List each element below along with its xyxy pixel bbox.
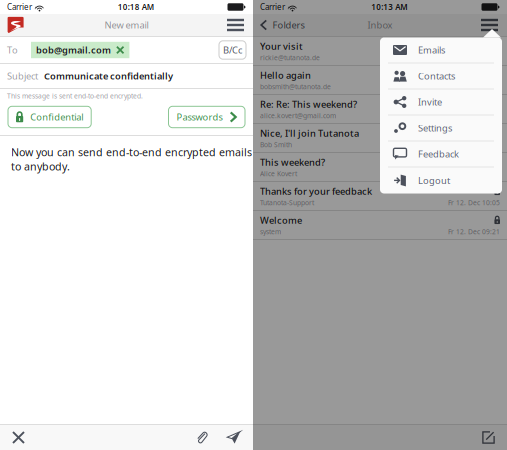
staticText: Your visit <box>260 40 303 52</box>
staticText: Carrier <box>260 2 285 12</box>
staticText: Confidential <box>30 111 83 123</box>
button[interactable]: Passwords <box>168 106 245 128</box>
staticText: Thanks for your feedback <box>260 185 372 197</box>
staticText: Fr 12. Dec 10:05 <box>448 198 500 207</box>
staticText: B/Cc <box>223 44 242 56</box>
staticText: rickie@tutanota.de <box>260 53 320 62</box>
staticText: Folders <box>272 19 304 31</box>
staticText: Emails <box>418 44 445 56</box>
staticText: Re: Re: This weekend? <box>260 98 357 110</box>
button[interactable]: Logout <box>380 167 502 193</box>
staticText: Feedback <box>418 148 459 160</box>
staticText: Communicate confidentially <box>44 70 173 82</box>
staticText: Welcome <box>260 214 302 226</box>
staticText: Settings <box>418 122 452 134</box>
staticText: 10:18 AM <box>118 2 154 12</box>
button[interactable]: Compose <box>477 426 500 449</box>
staticText: Hello again <box>260 69 311 81</box>
staticText: Subject <box>7 70 38 82</box>
staticText: Now you can send end-to-end encrypted em… <box>11 145 252 173</box>
button[interactable]: Settings <box>380 115 502 141</box>
staticText: bob@gmail.com <box>36 44 111 56</box>
staticText: Nice, I'll join Tutanota <box>260 127 359 139</box>
button[interactable]: Folders <box>260 19 304 31</box>
button[interactable]: Invite <box>380 89 502 115</box>
staticText: bobsmith@tutanota.de <box>260 82 331 91</box>
button[interactable]: Attach <box>191 426 214 449</box>
staticText: This weekend? <box>260 156 325 168</box>
button[interactable]: Send <box>222 426 246 449</box>
staticText: Carrier <box>7 2 32 12</box>
button[interactable]: Menu <box>225 17 246 33</box>
button[interactable]: Menu <box>479 17 500 33</box>
button[interactable]: Feedback <box>380 141 502 167</box>
staticText: New email <box>104 19 148 31</box>
staticText: Inbox <box>367 19 392 31</box>
button[interactable]: Remove recipient <box>116 46 124 54</box>
button[interactable]: B/Cc <box>219 41 246 59</box>
staticText: Tutanota-Support <box>260 198 314 207</box>
staticText: Invite <box>418 96 442 108</box>
staticText: Contacts <box>418 70 455 82</box>
button[interactable]: Confidential <box>8 106 91 128</box>
button[interactable]: Close <box>7 426 30 449</box>
button[interactable]: Emails <box>380 37 502 63</box>
staticText: system <box>260 227 281 236</box>
staticText: Alice Kovert <box>260 169 297 178</box>
staticText: Bob Smith <box>260 140 292 149</box>
staticText: This message is sent end-to-end encrypte… <box>7 92 143 100</box>
staticText: Fr 12. Dec 09:21 <box>448 227 500 236</box>
staticText: alice.kovert@gmail.com <box>260 111 336 120</box>
staticText: To <box>7 44 18 56</box>
staticText: Passwords <box>176 111 222 123</box>
staticText: Logout <box>418 174 450 187</box>
staticText: 10:13 AM <box>371 2 407 12</box>
button[interactable]: Contacts <box>380 63 502 89</box>
